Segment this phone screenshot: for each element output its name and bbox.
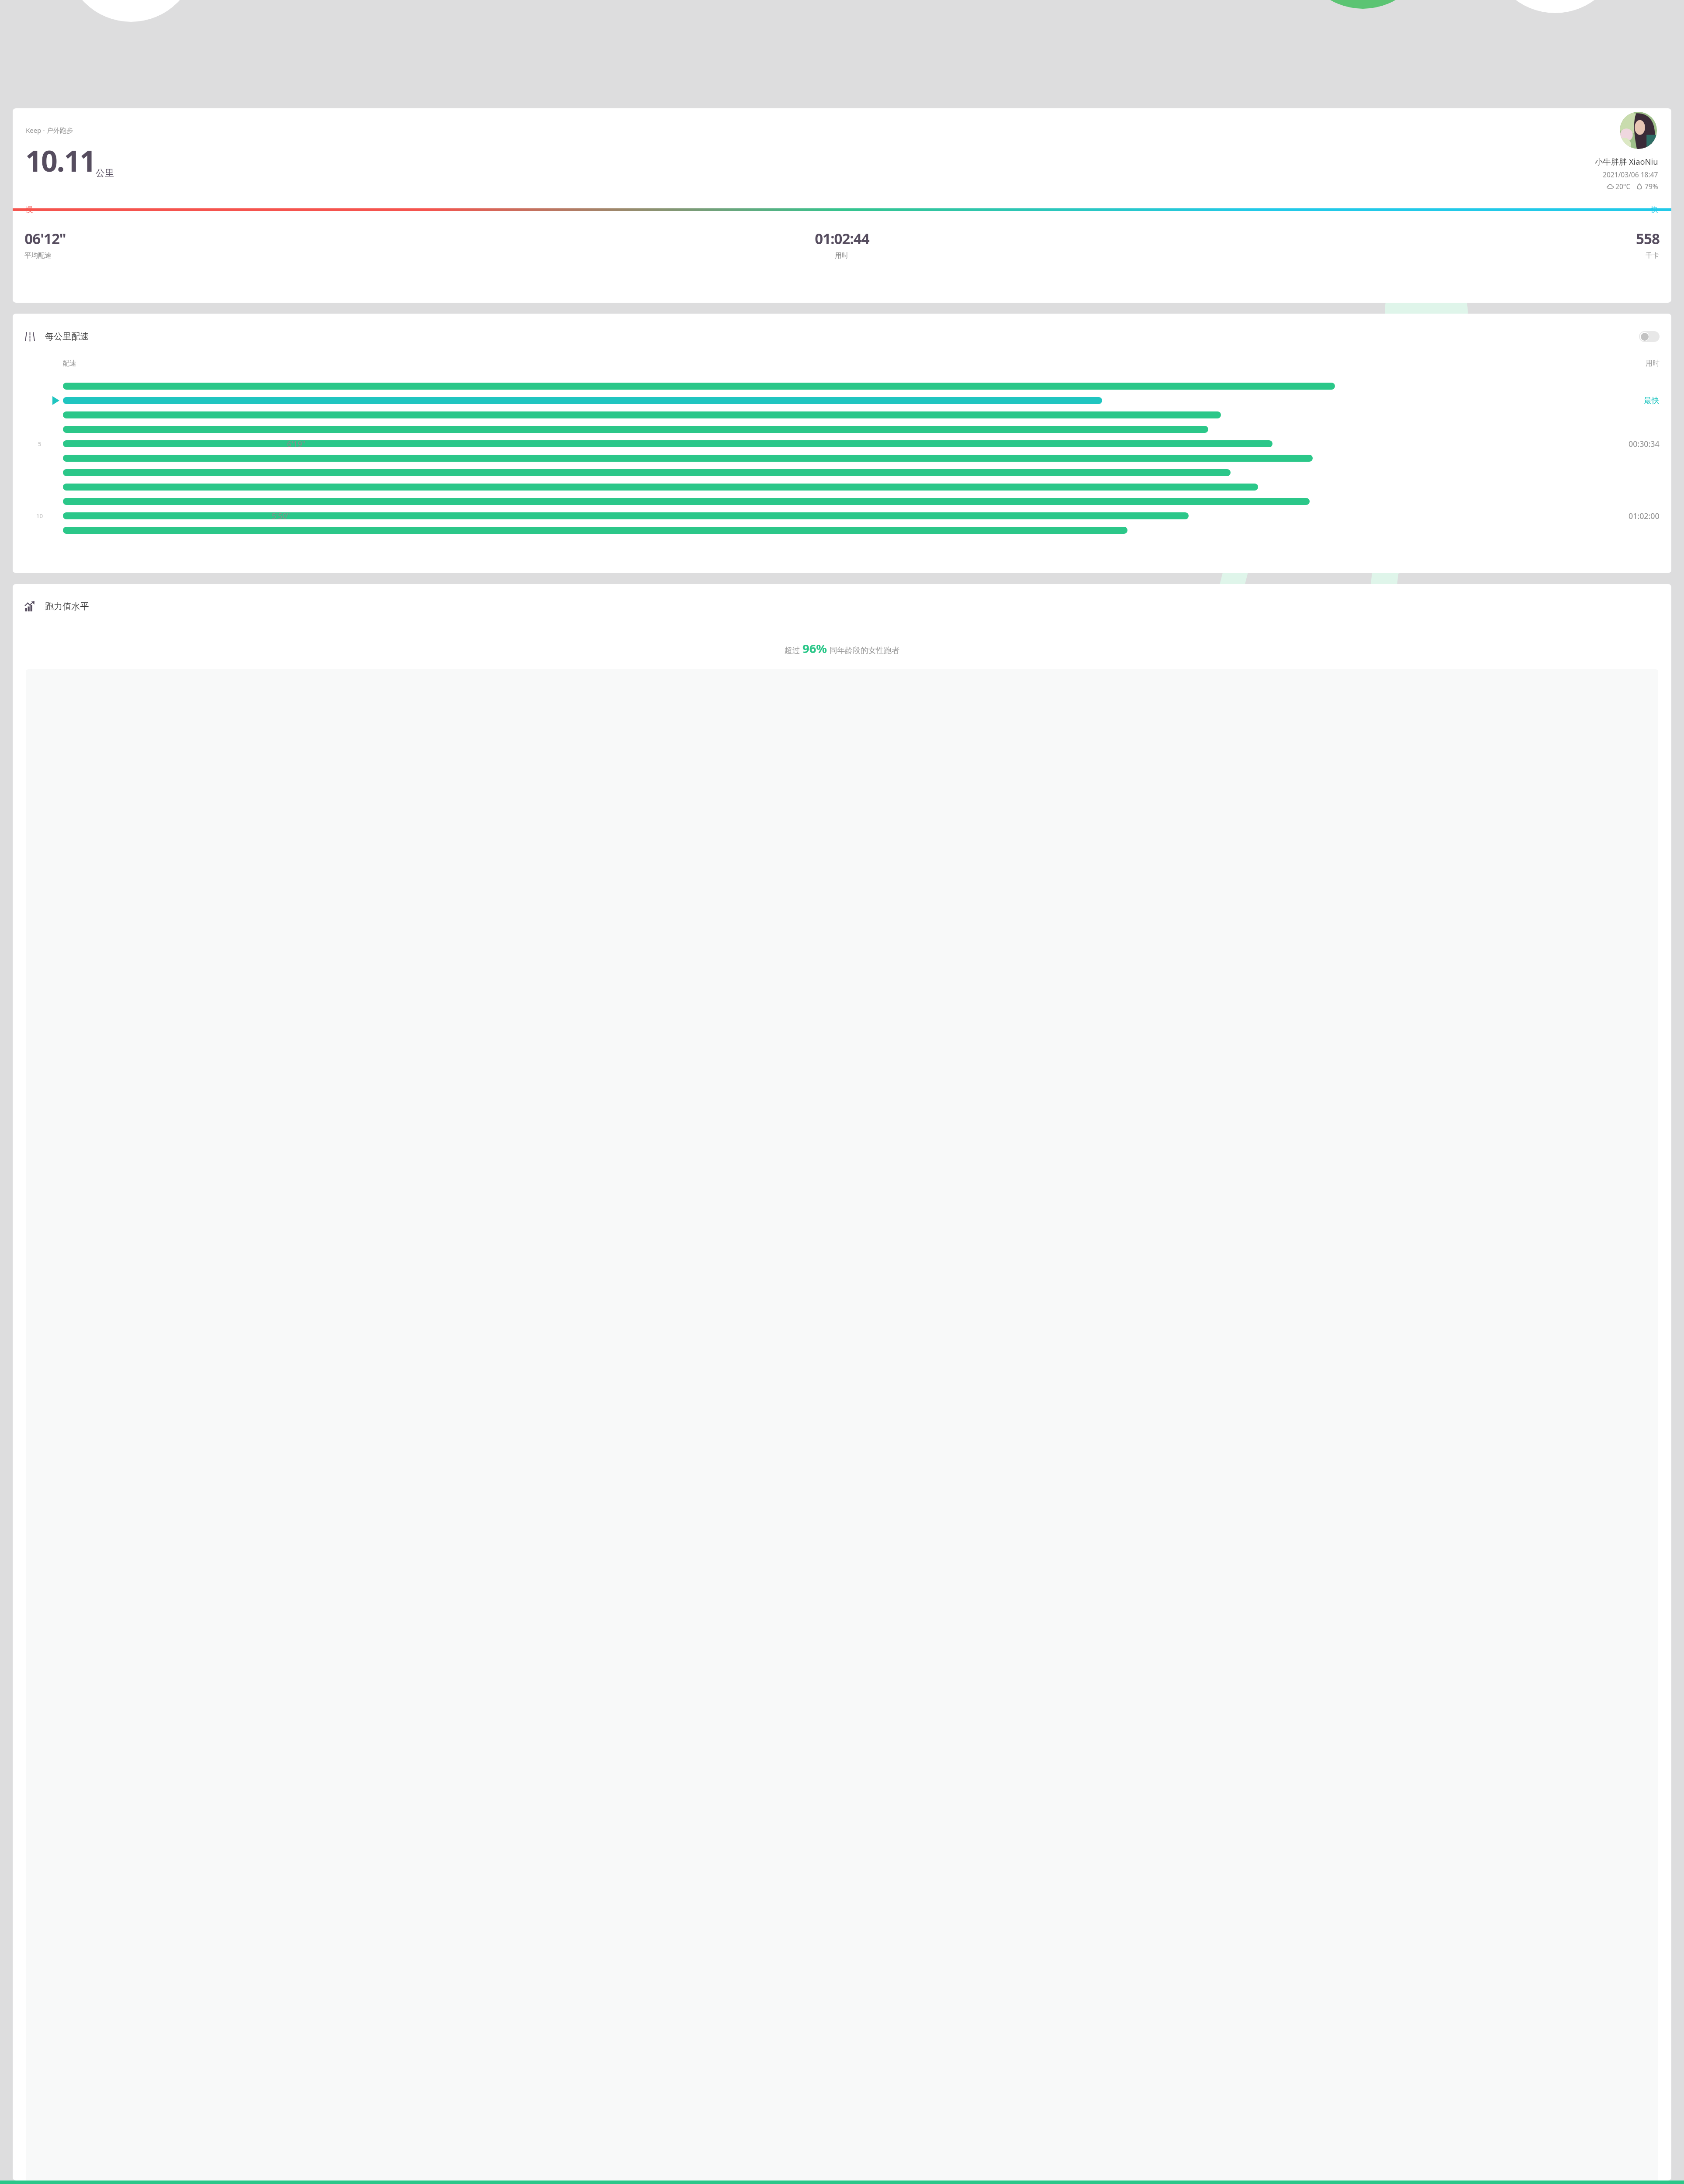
staticText: 最快 [1644, 396, 1660, 405]
staticText: 5'50" [272, 511, 290, 521]
button[interactable]: 06'12" [24, 229, 569, 260]
staticText: 平均配速 [24, 251, 52, 260]
staticText: 96% [802, 640, 827, 657]
staticText: 20°C [1615, 182, 1631, 191]
button[interactable] [13, 465, 1671, 480]
button[interactable]: 01:02:44 [569, 229, 1114, 260]
staticText: 跑力值水平 [45, 601, 89, 612]
button[interactable]: Toggle pace chart [1639, 331, 1660, 342]
staticText: 01:02:00 [1629, 511, 1660, 521]
staticText: 00:30:34 [1629, 439, 1660, 449]
staticText: 慢 [26, 205, 33, 214]
staticText: 公里 [96, 167, 114, 179]
staticText: Keep · 户外跑步 [26, 126, 73, 135]
staticText: 2021/03/06 18:47 [1603, 170, 1658, 179]
staticText: 同年龄段的女性跑者 [827, 645, 899, 655]
staticText: 558 [1636, 229, 1660, 249]
staticText: 01:02:44 [815, 229, 869, 249]
button[interactable]: 10 [13, 508, 1671, 523]
button[interactable]: 5 [13, 436, 1671, 451]
staticText: 快 [1651, 205, 1658, 214]
button[interactable] [13, 422, 1671, 436]
button[interactable] [13, 379, 1671, 393]
button[interactable] [13, 494, 1671, 508]
staticText: 用时 [1646, 359, 1660, 368]
staticText: 用时 [835, 251, 849, 260]
button[interactable] [13, 408, 1671, 422]
staticText: 10.11 [25, 141, 96, 180]
staticText: 5'19" [256, 395, 274, 406]
staticText: 06'12" [24, 229, 66, 249]
staticText: 10 [36, 512, 43, 520]
button[interactable]: 558 [1114, 229, 1660, 260]
staticText: 超过 [785, 645, 802, 655]
button[interactable]: 5'19" [13, 393, 1671, 408]
button[interactable] [13, 451, 1671, 465]
staticText: 小牛胖胖 XiaoNiu [1595, 156, 1658, 167]
staticText: 6'19" [287, 439, 305, 449]
staticText: 千卡 [1646, 251, 1660, 260]
button[interactable]: User avatar [1620, 112, 1657, 149]
staticText: 配速 [62, 359, 76, 368]
staticText: 每公里配速 [45, 331, 89, 342]
staticText: 5 [38, 440, 41, 448]
button[interactable] [13, 523, 1671, 537]
button[interactable] [13, 480, 1671, 494]
staticText: 79% [1645, 182, 1658, 191]
